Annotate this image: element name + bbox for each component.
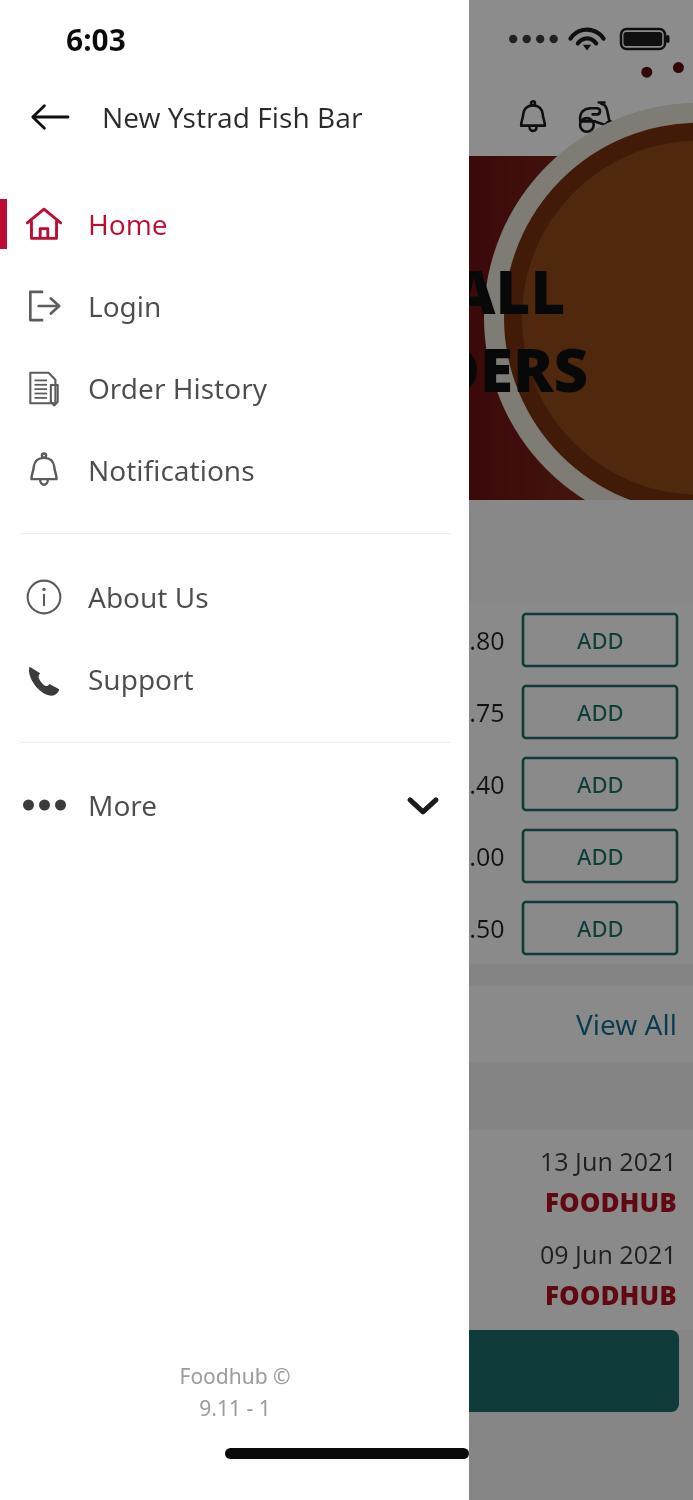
button[interactable] bbox=[14, 1330, 679, 1412]
staticText: 6.00 bbox=[455, 839, 505, 873]
button[interactable]: ADD bbox=[523, 830, 677, 882]
button[interactable]: Notifications bbox=[507, 91, 559, 143]
staticText: 5.75 bbox=[455, 695, 505, 729]
staticText: ADD bbox=[577, 697, 624, 727]
button[interactable]: Login bbox=[0, 265, 469, 347]
button[interactable]: ADD bbox=[523, 902, 677, 954]
staticText: ALL bbox=[452, 250, 566, 332]
staticText: Foodhub © bbox=[179, 1362, 291, 1391]
button[interactable]: View All bbox=[576, 1005, 677, 1043]
staticText: FOODHUB bbox=[545, 1184, 677, 1219]
staticText: 3.50 bbox=[455, 911, 505, 945]
staticText: Order History bbox=[88, 369, 268, 407]
staticText: ADD bbox=[577, 841, 624, 871]
button[interactable]: More bbox=[0, 765, 469, 845]
staticText: ADD bbox=[577, 625, 624, 655]
staticText: ADD bbox=[577, 769, 624, 799]
staticText: About Us bbox=[88, 578, 209, 616]
button[interactable]: Expand bbox=[629, 93, 677, 141]
staticText: View All bbox=[576, 1005, 677, 1043]
button[interactable]: ADD bbox=[523, 758, 677, 810]
button[interactable]: ADD bbox=[523, 686, 677, 738]
staticText: 09 Jun 2021 bbox=[540, 1237, 677, 1271]
staticText: Support bbox=[88, 660, 194, 698]
button[interactable]: Home bbox=[0, 183, 469, 265]
button[interactable]: Order History bbox=[0, 347, 469, 429]
button[interactable]: Notifications bbox=[0, 429, 469, 511]
staticText: 9.11 - 1 bbox=[199, 1394, 271, 1423]
staticText: 4.80 bbox=[455, 623, 505, 657]
staticText: 13 Jun 2021 bbox=[540, 1144, 677, 1178]
button[interactable]: ADD bbox=[523, 614, 677, 666]
staticText: Notifications bbox=[88, 451, 255, 489]
staticText: New Ystrad Fish Bar bbox=[102, 98, 363, 136]
button[interactable]: Support bbox=[0, 638, 469, 720]
staticText: 6:03 bbox=[66, 19, 126, 60]
staticText: 7.40 bbox=[455, 767, 505, 801]
staticText: Login bbox=[88, 287, 162, 325]
button[interactable]: Delivery options bbox=[571, 91, 623, 143]
staticText: Home bbox=[88, 205, 168, 243]
staticText: DERS bbox=[436, 328, 589, 410]
button[interactable]: Back bbox=[18, 85, 82, 149]
button[interactable]: About Us bbox=[0, 556, 469, 638]
staticText: ADD bbox=[577, 913, 624, 943]
staticText: FOODHUB bbox=[545, 1277, 677, 1312]
staticText: More bbox=[88, 786, 158, 824]
